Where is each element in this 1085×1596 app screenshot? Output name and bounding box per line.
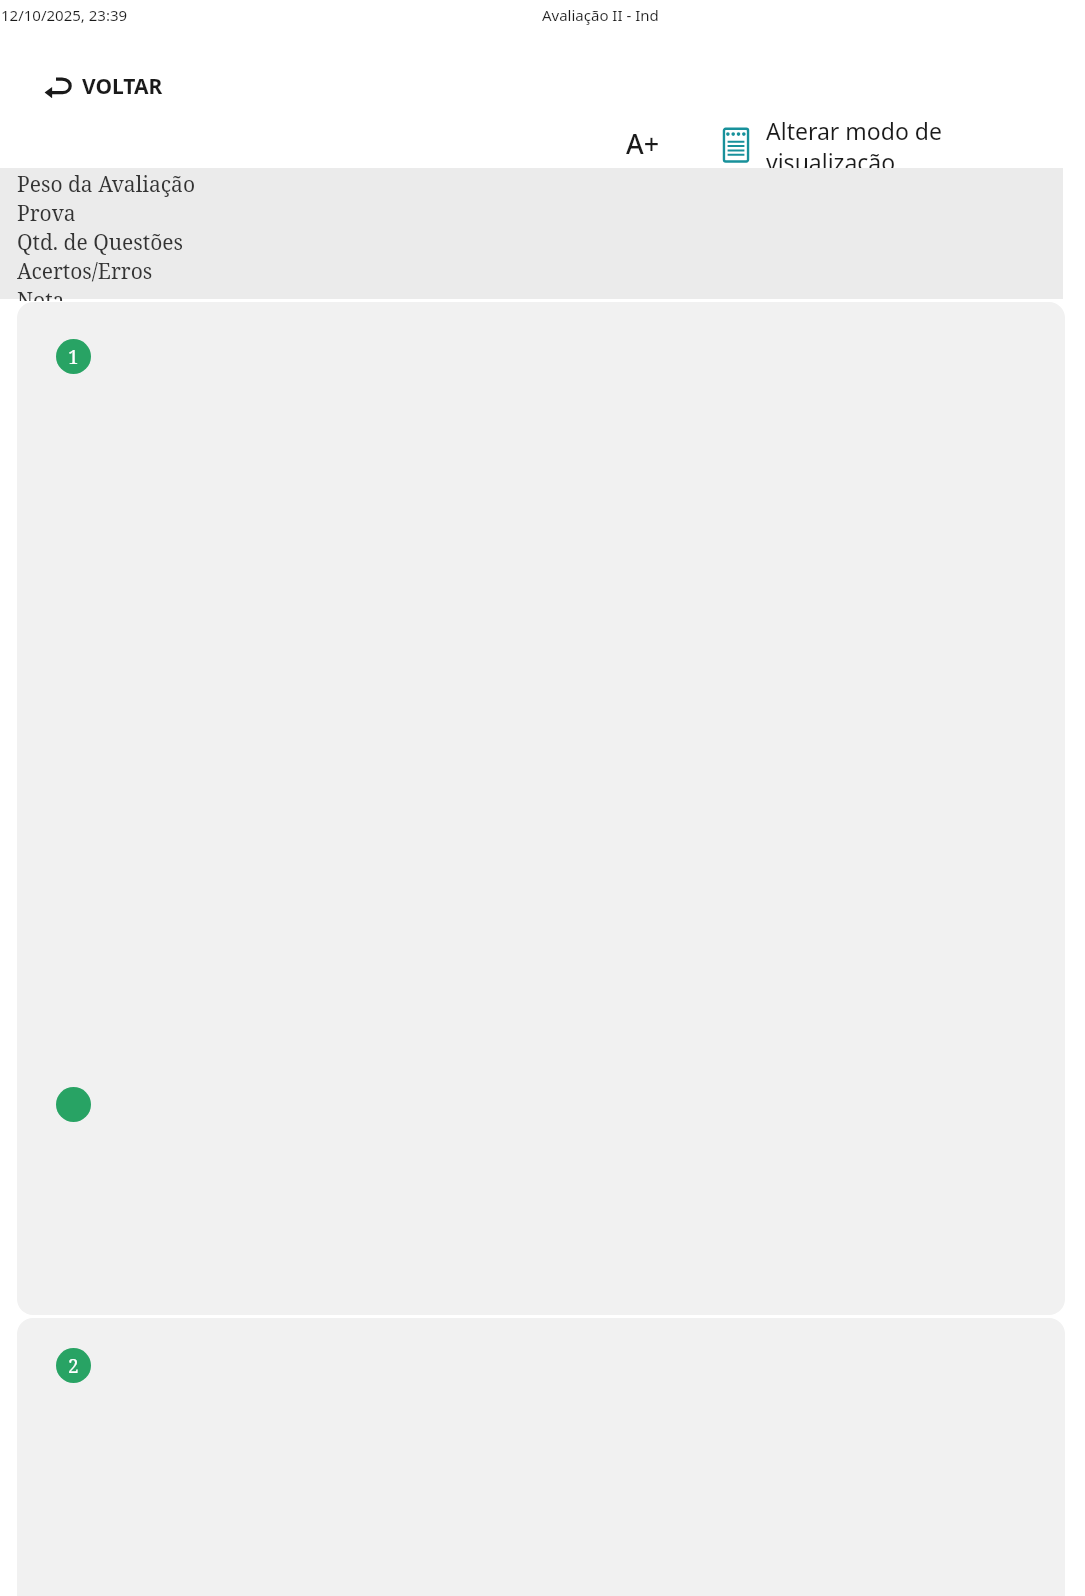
staticText: Alterar modo de visualização [766, 115, 1041, 172]
staticText: 1 [68, 344, 79, 370]
staticText: 2 [68, 1353, 79, 1379]
staticText: Peso da Avaliação [17, 170, 195, 199]
staticText: VOLTAR [82, 72, 163, 101]
button[interactable]: VOLTAR [40, 68, 167, 105]
staticText: Avaliação II - Ind [542, 5, 659, 25]
staticText: Qtd. de Questões [17, 228, 184, 257]
button[interactable]: Aumentar fonte [593, 116, 693, 171]
staticText: Prova [17, 199, 76, 228]
button[interactable]: 2 [17, 1318, 1065, 1596]
staticText: 12/10/2025, 23:39 [1, 5, 128, 25]
button[interactable]: 1 [17, 302, 1065, 1315]
staticText: Acertos/Erros [17, 257, 153, 286]
button[interactable]: Alternativa selecionada [56, 1087, 91, 1122]
staticText: A+ [626, 125, 660, 162]
staticText: Nota [17, 286, 65, 301]
button[interactable]: Alterar modo de visualização [708, 115, 1053, 172]
